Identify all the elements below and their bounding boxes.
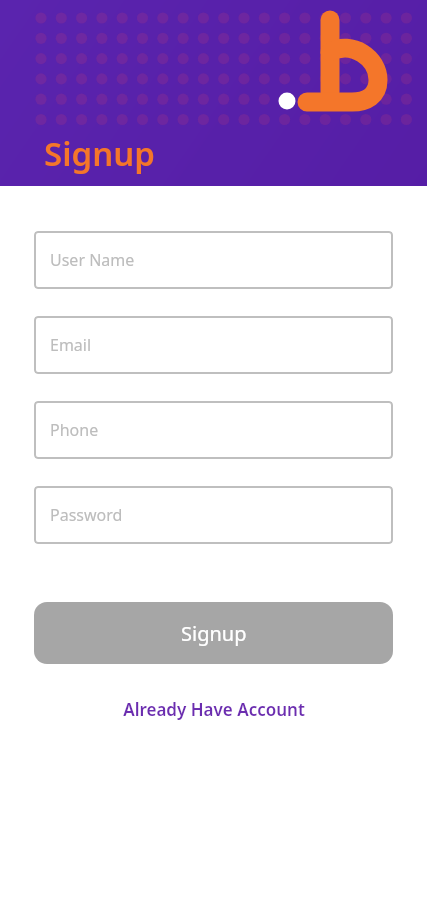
staticText: Already Have Account — [123, 698, 305, 721]
button[interactable]: Password — [34, 486, 393, 544]
button[interactable]: Already Have Account — [0, 690, 427, 729]
staticText: Phone — [50, 419, 99, 441]
button[interactable]: Email — [34, 316, 393, 374]
button[interactable]: User Name — [34, 231, 393, 289]
button[interactable]: Signup — [34, 602, 393, 664]
staticText: User Name — [50, 249, 135, 271]
staticText: Signup — [44, 131, 155, 176]
staticText: Signup — [181, 620, 247, 647]
staticText: Email — [50, 334, 92, 356]
button[interactable]: Phone — [34, 401, 393, 459]
staticText: Password — [50, 504, 123, 526]
